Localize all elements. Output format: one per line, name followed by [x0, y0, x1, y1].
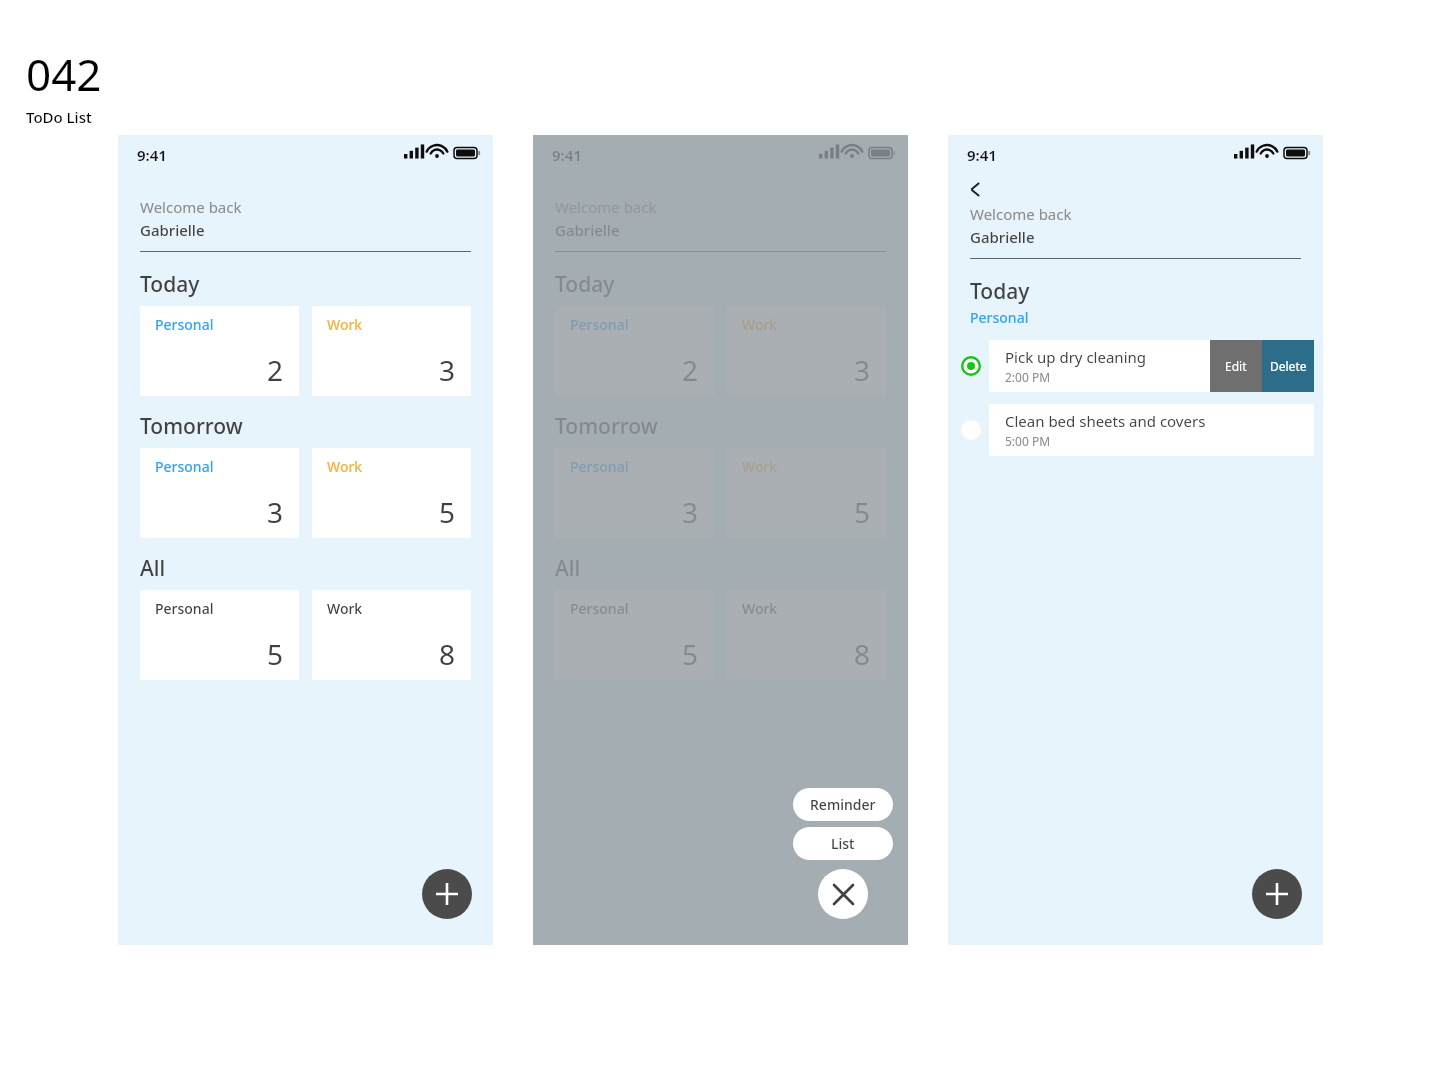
button[interactable]: Work — [312, 448, 471, 538]
staticText: Delete — [1270, 358, 1307, 374]
staticText: 3 — [267, 493, 284, 531]
staticText: 3 — [682, 493, 699, 531]
button[interactable]: Add task — [422, 869, 472, 919]
button[interactable]: Personal — [555, 306, 714, 396]
button[interactable]: Edit — [1210, 340, 1262, 392]
button[interactable]: Personal — [140, 306, 299, 396]
staticText: Pick up dry cleaning — [1005, 347, 1147, 367]
staticText: Personal — [155, 457, 214, 476]
button[interactable]: Mark complete — [957, 416, 985, 444]
staticText: Today — [555, 270, 615, 299]
staticText: 3 — [854, 351, 871, 389]
staticText: 5:00 PM — [1005, 433, 1051, 449]
staticText: 9:41 — [552, 145, 582, 165]
staticText: Work — [327, 599, 363, 618]
button[interactable]: Add task — [1252, 869, 1302, 919]
staticText: Edit — [1225, 358, 1247, 374]
staticText: Work — [742, 457, 778, 476]
staticText: Personal — [155, 315, 214, 334]
button[interactable]: Clean bed sheets and covers — [989, 404, 1314, 456]
button[interactable]: Personal — [140, 590, 299, 680]
button[interactable]: Personal — [555, 448, 714, 538]
staticText: Tomorrow — [140, 412, 243, 441]
staticText: Welcome back — [970, 204, 1072, 224]
staticText: 5 — [854, 493, 871, 531]
staticText: All — [140, 554, 166, 583]
staticText: 9:41 — [967, 145, 997, 165]
staticText: Tomorrow — [555, 412, 658, 441]
staticText: Personal — [570, 599, 629, 618]
button[interactable]: Close menu — [818, 869, 868, 919]
staticText: 8 — [439, 635, 456, 673]
staticText: Gabrielle — [555, 220, 620, 240]
button[interactable]: Pick up dry cleaning — [989, 340, 1314, 392]
staticText: Reminder — [810, 795, 876, 814]
button[interactable]: Back — [961, 175, 989, 203]
staticText: Gabrielle — [970, 227, 1035, 247]
staticText: Gabrielle — [140, 220, 205, 240]
staticText: Today — [140, 270, 200, 299]
staticText: Welcome back — [140, 197, 242, 217]
staticText: 2 — [267, 351, 284, 389]
button[interactable]: Work — [727, 306, 886, 396]
staticText: All — [555, 554, 581, 583]
staticText: List — [831, 834, 855, 853]
button[interactable]: Personal — [140, 448, 299, 538]
staticText: Personal — [570, 315, 629, 334]
staticText: Personal — [155, 599, 214, 618]
staticText: Welcome back — [555, 197, 657, 217]
staticText: Today — [970, 277, 1030, 306]
button[interactable]: Delete — [1262, 340, 1314, 392]
staticText: 5 — [682, 635, 699, 673]
staticText: Clean bed sheets and covers — [1005, 411, 1206, 431]
button[interactable]: Work — [727, 448, 886, 538]
button[interactable]: Work — [312, 306, 471, 396]
staticText: Personal — [570, 457, 629, 476]
staticText: 8 — [854, 635, 871, 673]
button[interactable]: Mark incomplete — [957, 352, 985, 380]
staticText: Work — [327, 315, 363, 334]
staticText: 5 — [267, 635, 284, 673]
button[interactable]: Reminder — [793, 788, 893, 821]
button[interactable]: List — [793, 827, 893, 860]
button[interactable]: Work — [312, 590, 471, 680]
staticText: 2:00 PM — [1005, 369, 1051, 385]
staticText: 5 — [439, 493, 456, 531]
staticText: Personal — [970, 308, 1029, 327]
button[interactable]: Work — [727, 590, 886, 680]
button[interactable]: Personal — [555, 590, 714, 680]
staticText: 042 — [26, 44, 102, 104]
staticText: 9:41 — [137, 145, 167, 165]
staticText: 2 — [682, 351, 699, 389]
staticText: 3 — [439, 351, 456, 389]
staticText: Work — [742, 315, 778, 334]
staticText: Work — [742, 599, 778, 618]
staticText: Work — [327, 457, 363, 476]
staticText: ToDo List — [26, 107, 92, 127]
